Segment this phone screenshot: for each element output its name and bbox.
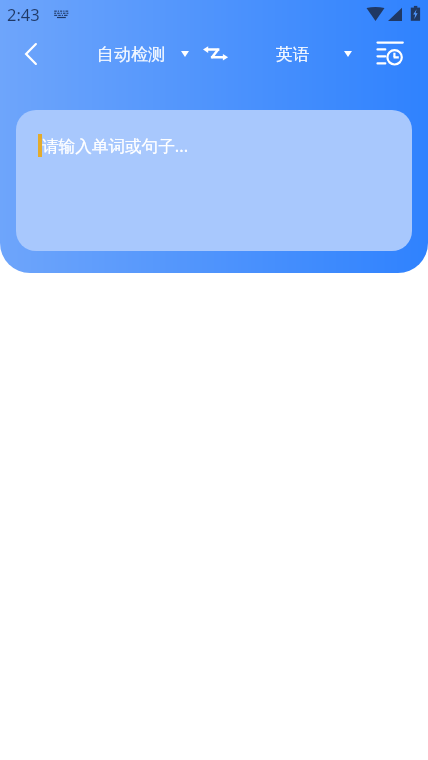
- button[interactable]: Back: [13, 32, 49, 76]
- button[interactable]: 英语: [276, 32, 352, 76]
- button[interactable]: 请输入单词或句子...: [16, 110, 412, 251]
- staticText: 请输入单词或句子...: [42, 134, 189, 157]
- staticText: 英语: [276, 44, 310, 65]
- staticText: 自动检测: [97, 44, 165, 65]
- staticText: 2:43: [7, 3, 40, 25]
- button[interactable]: Swap languages: [195, 32, 235, 76]
- button[interactable]: 自动检测: [97, 32, 189, 76]
- button[interactable]: History: [368, 32, 412, 76]
